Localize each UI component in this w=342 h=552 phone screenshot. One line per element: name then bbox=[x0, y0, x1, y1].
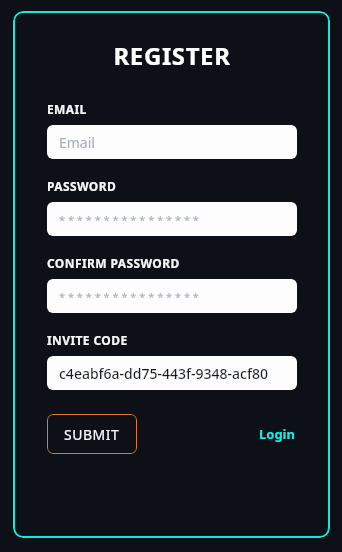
staticText: * * * * * * * * * * * * * * * * bbox=[59, 289, 199, 304]
staticText: c4eabf6a-dd75-443f-9348-acf80 bbox=[59, 364, 268, 383]
staticText: REGISTER bbox=[47, 39, 297, 72]
staticText: Login bbox=[259, 425, 295, 443]
button[interactable]: c4eabf6a-dd75-443f-9348-acf80 bbox=[47, 356, 297, 390]
staticText: EMAIL bbox=[47, 101, 87, 117]
staticText: PASSWORD bbox=[47, 178, 117, 194]
staticText: CONFIRM PASSWORD bbox=[47, 255, 180, 271]
button[interactable]: * * * * * * * * * * * * * * * * bbox=[47, 279, 297, 313]
staticText: SUBMIT bbox=[64, 425, 120, 444]
button[interactable]: Login bbox=[257, 419, 297, 449]
staticText: * * * * * * * * * * * * * * * * bbox=[59, 212, 199, 227]
button[interactable]: Email bbox=[47, 125, 297, 159]
staticText: Email bbox=[59, 133, 95, 152]
button[interactable]: * * * * * * * * * * * * * * * * bbox=[47, 202, 297, 236]
staticText: INVITE CODE bbox=[47, 332, 128, 348]
button[interactable]: SUBMIT bbox=[47, 414, 137, 454]
